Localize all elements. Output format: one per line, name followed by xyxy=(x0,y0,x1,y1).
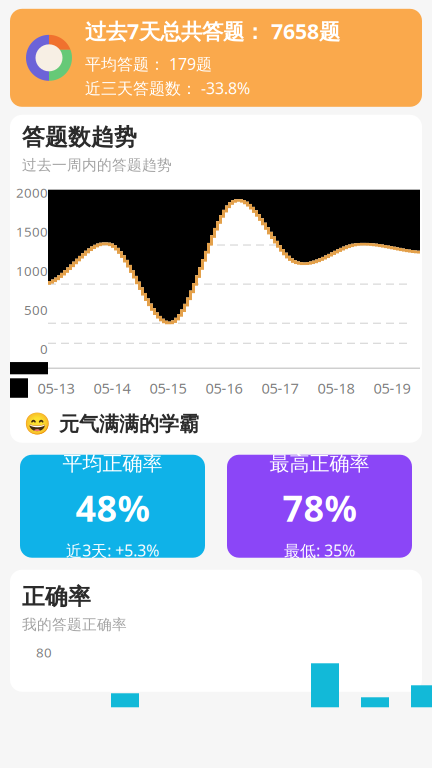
staticText: 48% xyxy=(75,484,149,532)
staticText: 2000 xyxy=(16,184,48,201)
staticText: 500 xyxy=(24,301,48,319)
staticText: 平均答题： 179题 xyxy=(85,53,212,74)
button[interactable]: 最高正确率 xyxy=(227,455,412,558)
staticText: 平均正确率 xyxy=(62,451,162,476)
staticText: 05-14 xyxy=(93,378,130,398)
staticText: 1500 xyxy=(16,223,48,240)
staticText: 过去一周内的答题趋势 xyxy=(22,156,172,174)
staticText: 过去7天总共答题： 7658题 xyxy=(85,17,340,45)
staticText: 80 xyxy=(36,644,52,661)
staticText: 最低: 35% xyxy=(284,540,355,561)
staticText: 05-19 xyxy=(373,378,410,398)
staticText: 最高正确率 xyxy=(269,451,369,476)
button[interactable]: 过去7天总共答题： 7658题 xyxy=(10,9,422,107)
staticText: 78% xyxy=(282,484,356,532)
staticText: 近3天: +5.3% xyxy=(66,540,159,561)
staticText: 正确率 xyxy=(22,583,91,610)
staticText: 1000 xyxy=(16,262,48,280)
staticText: 05-15 xyxy=(149,378,186,398)
staticText: 05-16 xyxy=(205,378,242,398)
staticText: 近三天答题数： -33.8% xyxy=(85,77,250,99)
staticText: 😄 xyxy=(24,412,51,436)
staticText: 05-17 xyxy=(261,378,298,398)
staticText: 我的答题正确率 xyxy=(22,616,127,634)
staticText: 0 xyxy=(40,340,48,358)
staticText: 05-18 xyxy=(317,378,354,398)
staticText: 答题数趋势 xyxy=(22,123,137,151)
button[interactable]: 平均正确率 xyxy=(20,455,205,558)
staticText: 元气满满的学霸 xyxy=(59,412,199,436)
staticText: 05-13 xyxy=(37,378,74,398)
